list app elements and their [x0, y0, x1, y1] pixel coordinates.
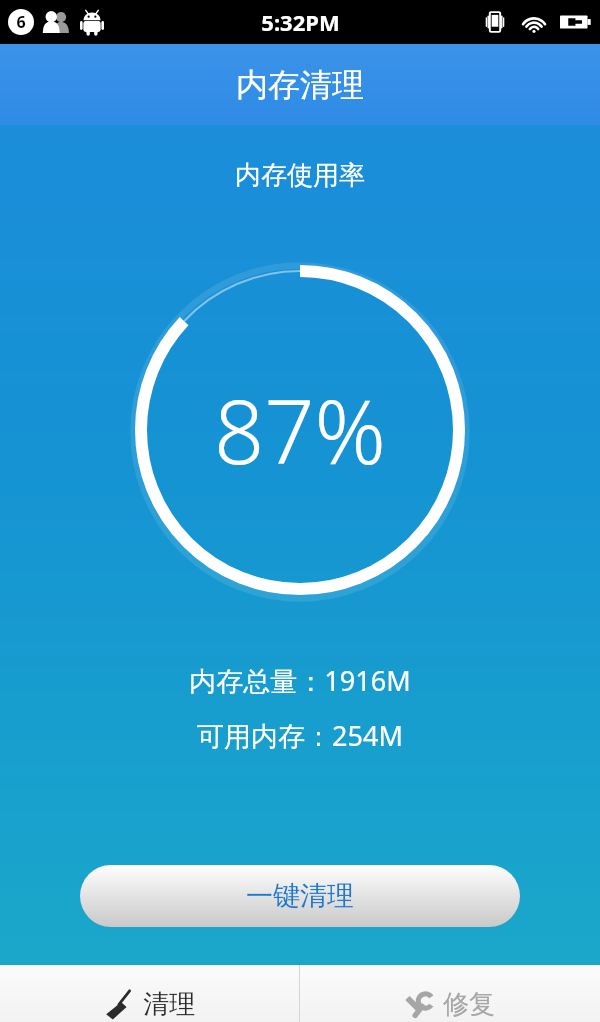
- staticText: 可用内存：254M: [197, 717, 403, 754]
- staticText: 87%: [214, 370, 386, 490]
- staticText: 清理: [143, 988, 195, 1021]
- staticText: 内存清理: [236, 65, 364, 105]
- staticText: 内存使用率: [235, 159, 365, 192]
- button[interactable]: 清理: [0, 965, 299, 1022]
- staticText: 5:32PM: [261, 7, 340, 37]
- button[interactable]: 一键清理: [80, 865, 520, 927]
- staticText: 6: [16, 11, 26, 33]
- staticText: 修复: [443, 988, 495, 1021]
- staticText: 内存总量：1916M: [189, 662, 411, 699]
- staticText: 一键清理: [246, 879, 354, 913]
- button[interactable]: 修复: [300, 965, 600, 1022]
